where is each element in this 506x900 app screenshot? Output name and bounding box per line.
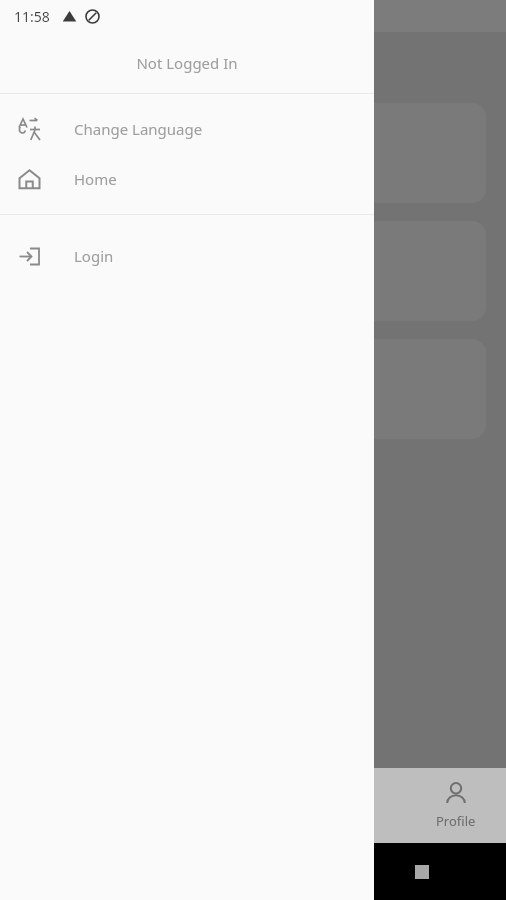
- staticText: Profile: [436, 812, 476, 830]
- button[interactable]: Cart: [304, 768, 405, 843]
- button[interactable]: Not Logged In: [0, 32, 374, 93]
- button[interactable]: Profile: [405, 768, 506, 843]
- staticText: Login: [74, 246, 114, 266]
- button[interactable]: Home: [0, 154, 374, 204]
- button[interactable]: Change Language: [0, 104, 374, 154]
- staticText: 11:58: [14, 7, 50, 26]
- staticText: Change Language: [74, 119, 203, 139]
- staticText: Not Logged In: [136, 53, 238, 73]
- staticText: Home: [74, 169, 117, 189]
- button[interactable]: Login: [0, 231, 374, 281]
